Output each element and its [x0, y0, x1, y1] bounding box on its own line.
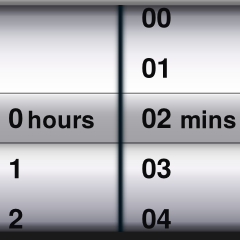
- staticText: 01: [142, 47, 172, 86]
- staticText: mins: [180, 101, 236, 136]
- staticText: 2: [8, 198, 23, 237]
- staticText: hours: [27, 101, 94, 136]
- staticText: 1: [8, 147, 23, 187]
- staticText: 02: [142, 97, 172, 136]
- staticText: 03: [142, 147, 172, 187]
- staticText: 04: [142, 198, 172, 237]
- staticText: 0: [8, 97, 23, 136]
- staticText: 00: [142, 0, 172, 36]
- button[interactable]: Countdown timer picker: [0, 0, 240, 240]
